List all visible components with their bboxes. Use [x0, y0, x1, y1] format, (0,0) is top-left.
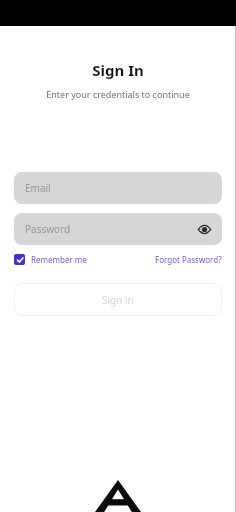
staticText: Forgot Password? [155, 254, 222, 265]
button[interactable]: Password [14, 213, 222, 245]
staticText: Remember me [31, 254, 87, 265]
button[interactable]: Remember me [14, 252, 87, 267]
staticText: Enter your credentials to continue [0, 88, 236, 100]
staticText: Sign In [0, 60, 236, 80]
staticText: Sign in [102, 293, 134, 307]
button[interactable]: Sign in [14, 283, 222, 316]
button[interactable]: Forgot Password? [155, 252, 222, 267]
button[interactable]: Show password [194, 219, 214, 239]
staticText: Email [25, 181, 51, 195]
staticText: Password [25, 222, 71, 236]
button[interactable]: Email [14, 172, 222, 204]
